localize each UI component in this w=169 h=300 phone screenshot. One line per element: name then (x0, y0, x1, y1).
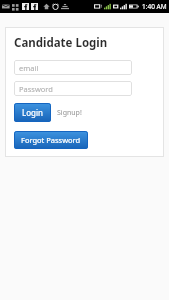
button[interactable]: Login (14, 103, 51, 122)
staticText: Forgot Password (21, 135, 81, 145)
staticText: Candidate Login (14, 35, 108, 51)
staticText: Login (22, 107, 43, 118)
button[interactable]: email (14, 60, 132, 75)
button[interactable]: Password (14, 81, 132, 96)
staticText: Password (19, 84, 53, 94)
staticText: email (19, 63, 39, 73)
staticText: Signup! (57, 108, 82, 118)
button[interactable]: Forgot Password (14, 131, 88, 149)
button[interactable]: Signup! (57, 108, 82, 118)
staticText: 1:40 AM (142, 2, 167, 11)
